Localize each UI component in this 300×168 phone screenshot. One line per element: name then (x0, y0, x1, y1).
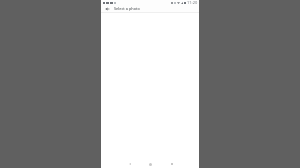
staticText: Select a photo (114, 6, 140, 11)
button[interactable]: Home (140, 161, 161, 167)
button[interactable]: Back (119, 161, 140, 167)
button[interactable]: Recent apps (161, 161, 182, 167)
staticText: 11:20 (187, 0, 198, 5)
button[interactable]: Navigate up (104, 5, 111, 12)
